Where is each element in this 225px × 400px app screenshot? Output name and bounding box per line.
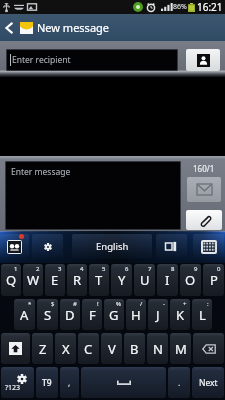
staticText: Q: [6, 271, 17, 289]
button[interactable]: Space: [81, 367, 166, 398]
button[interactable]: U: [134, 264, 155, 296]
button[interactable]: C: [78, 333, 99, 364]
button[interactable]: W: [23, 264, 43, 296]
staticText: #: [73, 300, 77, 308]
staticText: English: [96, 240, 129, 253]
staticText: 6: [125, 265, 129, 273]
staticText: $: [51, 300, 55, 308]
staticText: I: [165, 271, 170, 289]
staticText: E: [51, 271, 59, 289]
staticText: !: [97, 300, 99, 308]
staticText: %: [116, 300, 121, 308]
staticText: 5: [102, 265, 106, 273]
staticText: G: [109, 306, 119, 324]
staticText: 2: [36, 265, 40, 273]
staticText: Next: [199, 377, 218, 389]
button[interactable]: O: [180, 264, 201, 296]
staticText: 7: [148, 265, 152, 273]
staticText: S: [44, 306, 52, 324]
staticText: :: [207, 300, 209, 308]
staticText: 9: [194, 265, 198, 273]
button[interactable]: X: [55, 333, 76, 364]
button[interactable]: Next: [192, 367, 224, 398]
staticText: U: [140, 271, 150, 289]
staticText: -: [163, 300, 165, 308]
staticText: .: [178, 377, 181, 389]
button[interactable]: English: [72, 234, 152, 259]
staticText: M: [175, 340, 187, 358]
button[interactable]: Y: [111, 264, 132, 296]
button[interactable]: T9: [36, 367, 58, 398]
staticText: /: [140, 300, 143, 308]
button[interactable]: S: [37, 299, 58, 330]
button[interactable]: Enter recipient: [6, 49, 178, 71]
staticText: P: [210, 271, 218, 289]
button[interactable]: V: [101, 333, 122, 364]
staticText: V: [108, 340, 116, 358]
button[interactable]: N: [147, 333, 168, 364]
button[interactable]: Period: [168, 367, 190, 398]
staticText: 86%: [173, 2, 187, 12]
staticText: 160/1: [193, 163, 215, 174]
button[interactable]: J: [148, 299, 168, 330]
staticText: L: [199, 306, 206, 324]
button[interactable]: Split keyboard: [156, 234, 187, 259]
staticText: 4: [80, 265, 84, 273]
button[interactable]: L: [192, 299, 212, 330]
staticText: New message: [37, 20, 110, 35]
button[interactable]: B: [124, 333, 145, 364]
button[interactable]: Shift: [1, 333, 30, 364]
staticText: Enter message: [11, 166, 71, 178]
staticText: F: [89, 306, 96, 324]
staticText: Enter recipient: [12, 54, 71, 66]
staticText: Z: [39, 340, 47, 358]
button[interactable]: K: [170, 299, 190, 330]
staticText: R: [73, 271, 82, 289]
button[interactable]: Comma: [60, 367, 79, 398]
button[interactable]: Z: [32, 333, 53, 364]
staticText: ?123: [5, 383, 21, 393]
button[interactable]: G: [104, 299, 124, 330]
button[interactable]: Select contacts: [186, 49, 220, 71]
staticText: K: [176, 306, 185, 324]
button[interactable]: T: [89, 264, 109, 296]
staticText: 0: [217, 265, 221, 273]
staticText: B: [130, 340, 139, 358]
button[interactable]: Enter message: [5, 161, 181, 230]
staticText: J: [156, 306, 160, 324]
staticText: *: [28, 300, 32, 308]
staticText: X: [62, 340, 70, 358]
staticText: D: [65, 306, 75, 324]
button[interactable]: I: [157, 264, 178, 296]
button[interactable]: R: [67, 264, 87, 296]
staticText: 1: [14, 265, 18, 273]
button[interactable]: Backspace: [193, 333, 224, 364]
button[interactable]: Send message: [187, 177, 221, 202]
button[interactable]: Voice input: [0, 234, 29, 259]
staticText: 16:21: [197, 0, 223, 14]
button[interactable]: P: [203, 264, 224, 296]
button[interactable]: Q: [1, 264, 21, 296]
staticText: T: [95, 271, 103, 289]
staticText: ,: [68, 377, 71, 389]
button[interactable]: H: [126, 299, 146, 330]
staticText: A: [20, 306, 29, 324]
button[interactable]: Navigate up: [0, 14, 18, 41]
staticText: 3: [58, 265, 62, 273]
staticText: C: [84, 340, 93, 358]
staticText: T9: [42, 377, 52, 389]
button[interactable]: D: [60, 299, 80, 330]
button[interactable]: E: [45, 264, 65, 296]
button[interactable]: F: [82, 299, 102, 330]
button[interactable]: A: [14, 299, 35, 330]
button[interactable]: Symbols: [1, 367, 34, 398]
button[interactable]: Change keyboard: [193, 234, 224, 259]
button[interactable]: Keyboard settings: [32, 234, 63, 259]
staticText: O: [185, 271, 196, 289]
staticText: N: [153, 340, 163, 358]
button[interactable]: Attach file: [186, 210, 222, 230]
staticText: H: [131, 306, 141, 324]
staticText: 8: [171, 265, 175, 273]
staticText: +: [183, 300, 187, 308]
button[interactable]: M: [170, 333, 191, 364]
